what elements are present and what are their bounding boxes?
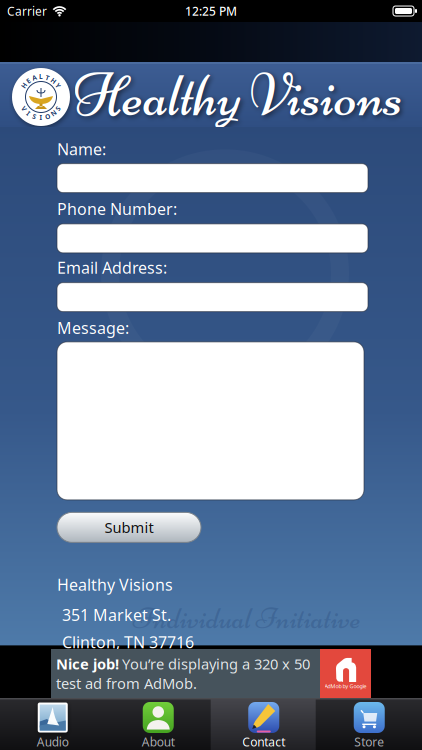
staticText: N xyxy=(51,109,56,118)
staticText: AdMob by Google xyxy=(324,683,366,690)
staticText: I xyxy=(27,109,30,118)
button[interactable]: Audio xyxy=(0,698,105,750)
staticText: O xyxy=(45,112,50,121)
button[interactable]: Message text field xyxy=(57,342,364,500)
staticText: Healthy Visions xyxy=(73,60,402,132)
staticText: E xyxy=(27,76,31,85)
staticText: Submit xyxy=(104,518,153,537)
staticText: Store xyxy=(354,734,384,750)
button[interactable]: Ad: test ad from AdMob xyxy=(51,649,371,698)
staticText: You’re displaying a 320 x 50 xyxy=(122,654,310,673)
staticText: About xyxy=(142,734,175,750)
staticText: S xyxy=(32,112,36,121)
staticText: Nice job! xyxy=(56,654,119,673)
staticText: 12:25 PM xyxy=(185,3,237,19)
staticText: H xyxy=(21,81,26,90)
staticText: 351 Market St. xyxy=(62,604,171,625)
staticText: Name: xyxy=(57,138,106,160)
staticText: T xyxy=(46,73,50,82)
button[interactable]: Email Address text field xyxy=(57,283,368,312)
staticText: Phone Number: xyxy=(57,198,177,219)
staticText: Clinton, TN 37716 xyxy=(62,631,194,653)
button[interactable]: Store xyxy=(316,698,422,750)
button[interactable]: About xyxy=(105,698,211,750)
staticText: L xyxy=(39,72,43,81)
staticText: Individual Initiative xyxy=(133,600,361,637)
staticText: Y xyxy=(56,81,60,90)
button[interactable]: Submit xyxy=(57,512,201,542)
button[interactable]: Contact xyxy=(211,698,316,750)
staticText: Healthy Visions xyxy=(57,574,173,595)
staticText: H xyxy=(51,76,56,85)
staticText: V xyxy=(22,104,26,113)
staticText: I xyxy=(39,113,42,122)
staticText: Contact xyxy=(242,734,285,750)
staticText: Audio xyxy=(37,734,69,750)
button[interactable]: Phone Number text field xyxy=(57,224,368,253)
staticText: Carrier xyxy=(7,3,47,19)
staticText: test ad from AdMob. xyxy=(56,673,197,693)
staticText: S xyxy=(56,104,60,113)
staticText: Message: xyxy=(57,317,129,338)
staticText: A xyxy=(32,73,37,82)
button[interactable]: Name text field xyxy=(57,164,368,193)
staticText: Email Address: xyxy=(57,257,167,278)
